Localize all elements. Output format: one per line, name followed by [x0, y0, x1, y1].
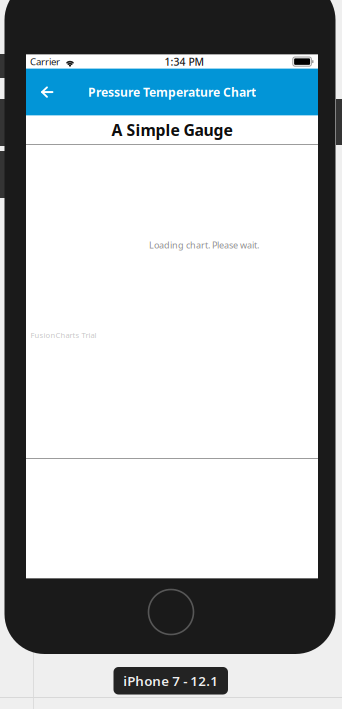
staticText: iPhone 7 - 12.1	[123, 672, 218, 690]
staticText: Carrier	[30, 55, 60, 68]
staticText: A Simple Gauge	[111, 119, 232, 140]
staticText: Loading chart. Please wait.	[149, 239, 259, 251]
staticText: FusionCharts Trial	[30, 330, 96, 340]
staticText: Pressure Temperature Chart	[88, 84, 256, 100]
staticText: 1:34 PM	[164, 55, 204, 68]
button[interactable]: Back	[30, 69, 64, 116]
